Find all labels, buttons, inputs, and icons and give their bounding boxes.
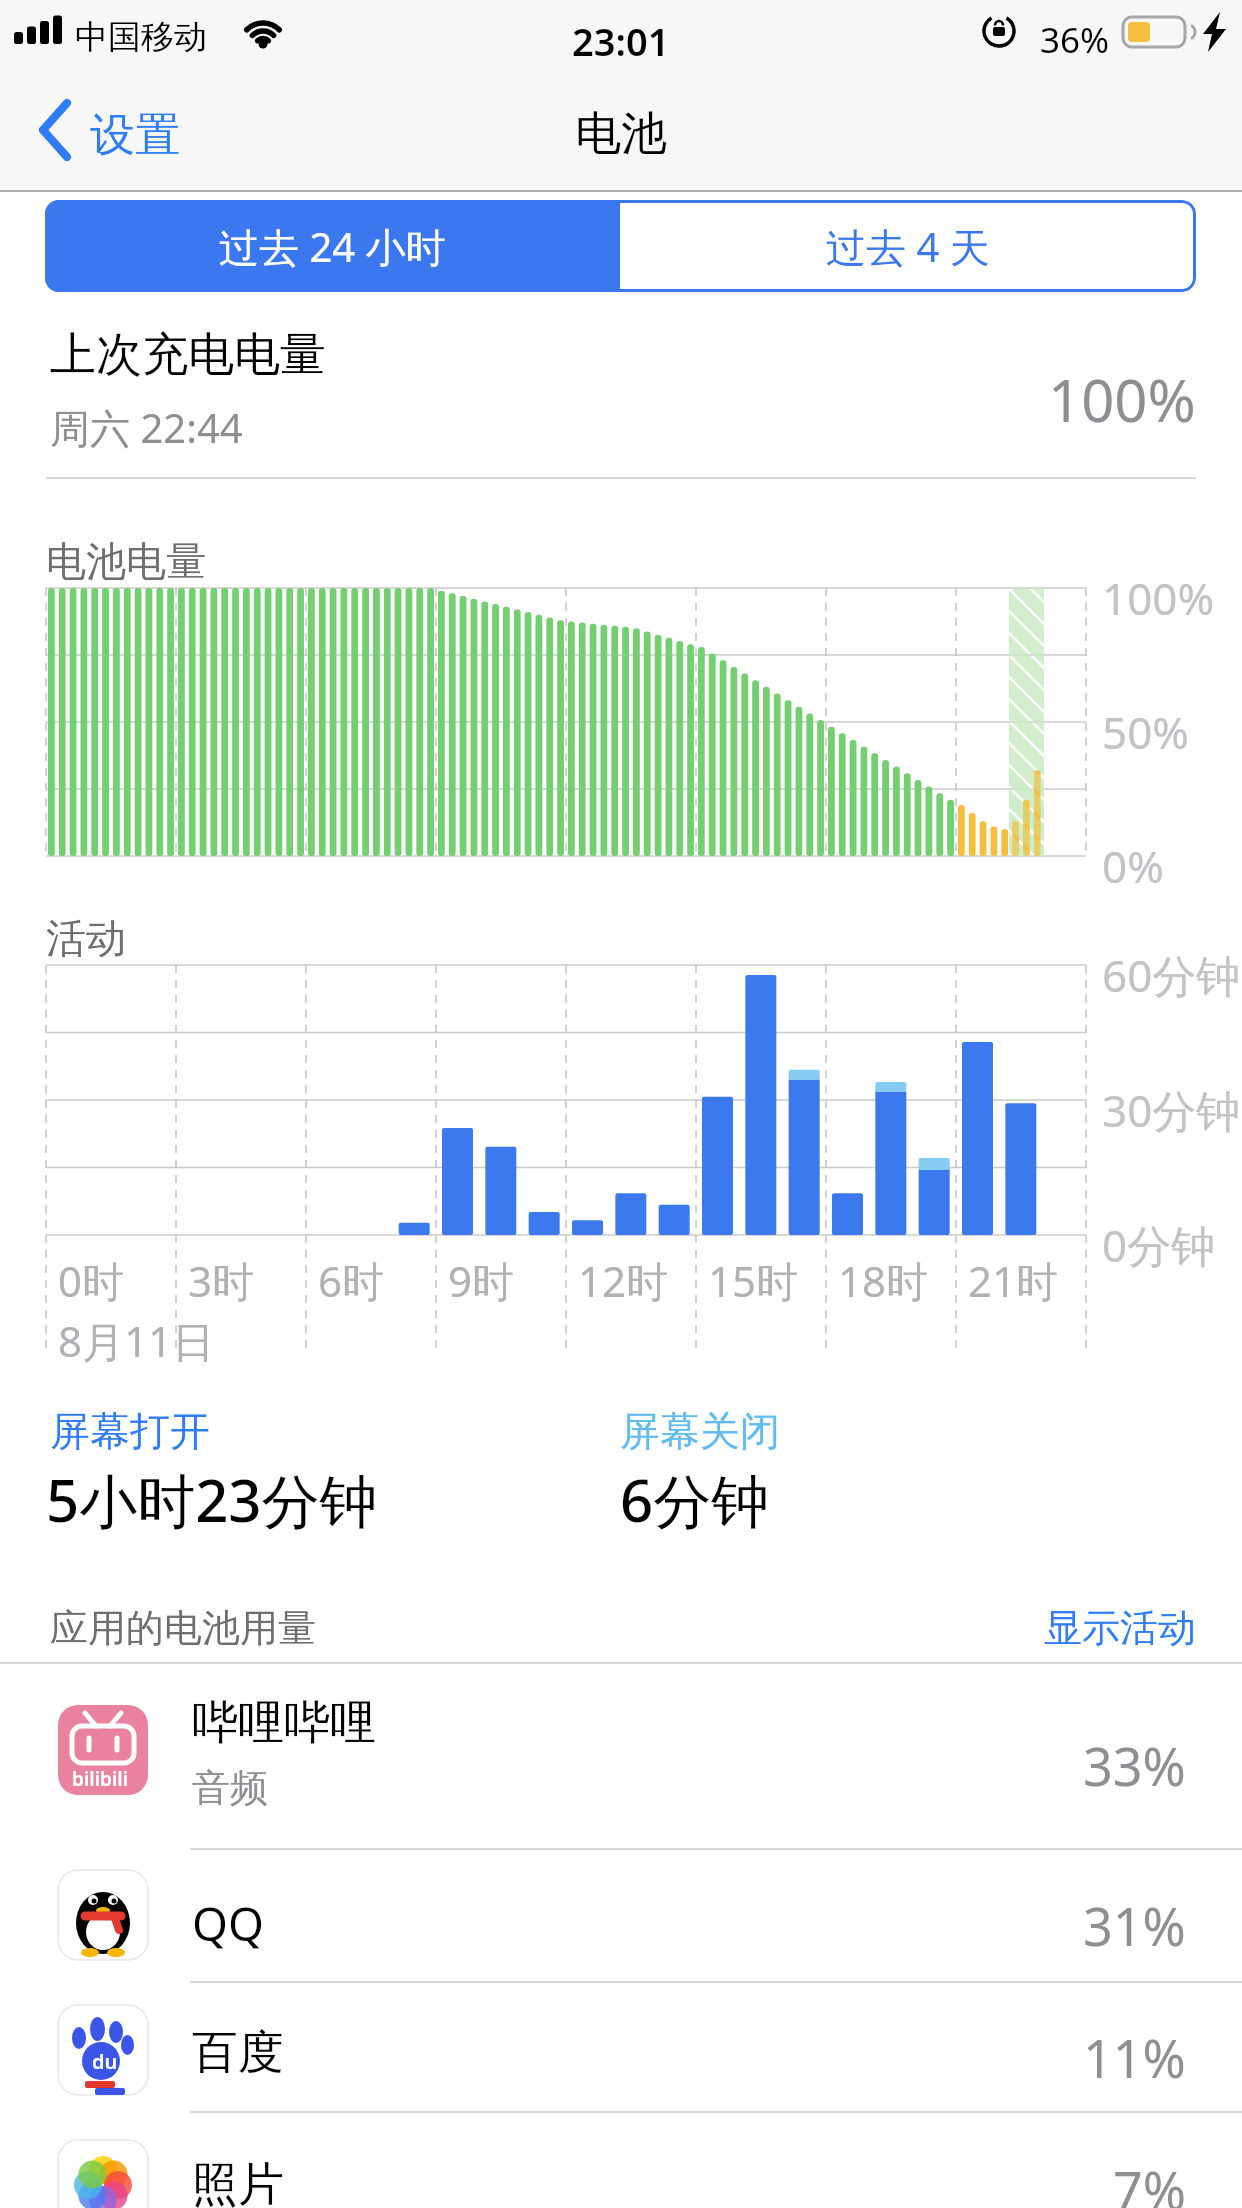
staticText: 12时 [578, 1252, 669, 1309]
staticText: 周六 22:44 [50, 400, 243, 455]
button[interactable]: 过去 4 天 [620, 200, 1196, 292]
staticText: 过去 24 小时 [219, 219, 446, 274]
staticText: QQ [192, 1892, 264, 1955]
button[interactable] [0, 1663, 1242, 1848]
staticText: 8月11日 [58, 1312, 215, 1369]
staticText: 电池电量 [46, 536, 206, 586]
button[interactable] [0, 1982, 1242, 2112]
staticText: 9时 [448, 1252, 515, 1309]
staticText: 18时 [838, 1252, 929, 1309]
staticText: 设置 [90, 107, 180, 164]
staticText: 100% [1102, 568, 1215, 628]
staticText: 3时 [188, 1252, 255, 1309]
staticText: 31% [1083, 1890, 1186, 1961]
staticText: 应用的电池用量 [50, 1604, 316, 1652]
staticText: 过去 4 天 [826, 219, 990, 274]
staticText: 15时 [708, 1252, 799, 1309]
staticText: 上次充电电量 [50, 326, 326, 384]
staticText: 6时 [318, 1252, 385, 1309]
staticText: 7% [1113, 2154, 1186, 2208]
staticText: 屏幕关闭 [620, 1406, 780, 1456]
staticText: 6分钟 [620, 1460, 770, 1539]
staticText: 活动 [46, 913, 126, 963]
staticText: 33% [1083, 1730, 1186, 1801]
staticText: du [92, 2048, 118, 2075]
staticText: 23:01 [572, 15, 670, 67]
staticText: 36% [1040, 16, 1110, 64]
staticText: 音频 [192, 1764, 268, 1812]
staticText: 21时 [968, 1252, 1059, 1309]
staticText: 中国移动 [75, 16, 207, 58]
staticText: 哔哩哔哩 [192, 1694, 376, 1752]
staticText: 0分钟 [1102, 1215, 1216, 1275]
staticText: 11% [1083, 2022, 1186, 2093]
button[interactable] [30, 92, 210, 172]
staticText: 5小时23分钟 [46, 1460, 378, 1539]
button[interactable] [0, 1849, 1242, 1982]
staticText: 50% [1102, 702, 1189, 762]
staticText: 0% [1102, 836, 1164, 896]
staticText: 30分钟 [1102, 1080, 1241, 1140]
staticText: 屏幕打开 [50, 1406, 210, 1456]
button[interactable]: 显示活动 [1044, 1604, 1196, 1652]
staticText: 照片 [192, 2156, 284, 2208]
button[interactable] [0, 2112, 1242, 2208]
staticText: bilibili [72, 1766, 129, 1792]
staticText: 百度 [192, 2024, 284, 2082]
button[interactable]: 过去 24 小时 [45, 200, 620, 292]
staticText: 0时 [58, 1252, 125, 1309]
staticText: 100% [1048, 360, 1196, 439]
staticText: 电池 [575, 105, 667, 163]
staticText: 60分钟 [1102, 945, 1241, 1005]
